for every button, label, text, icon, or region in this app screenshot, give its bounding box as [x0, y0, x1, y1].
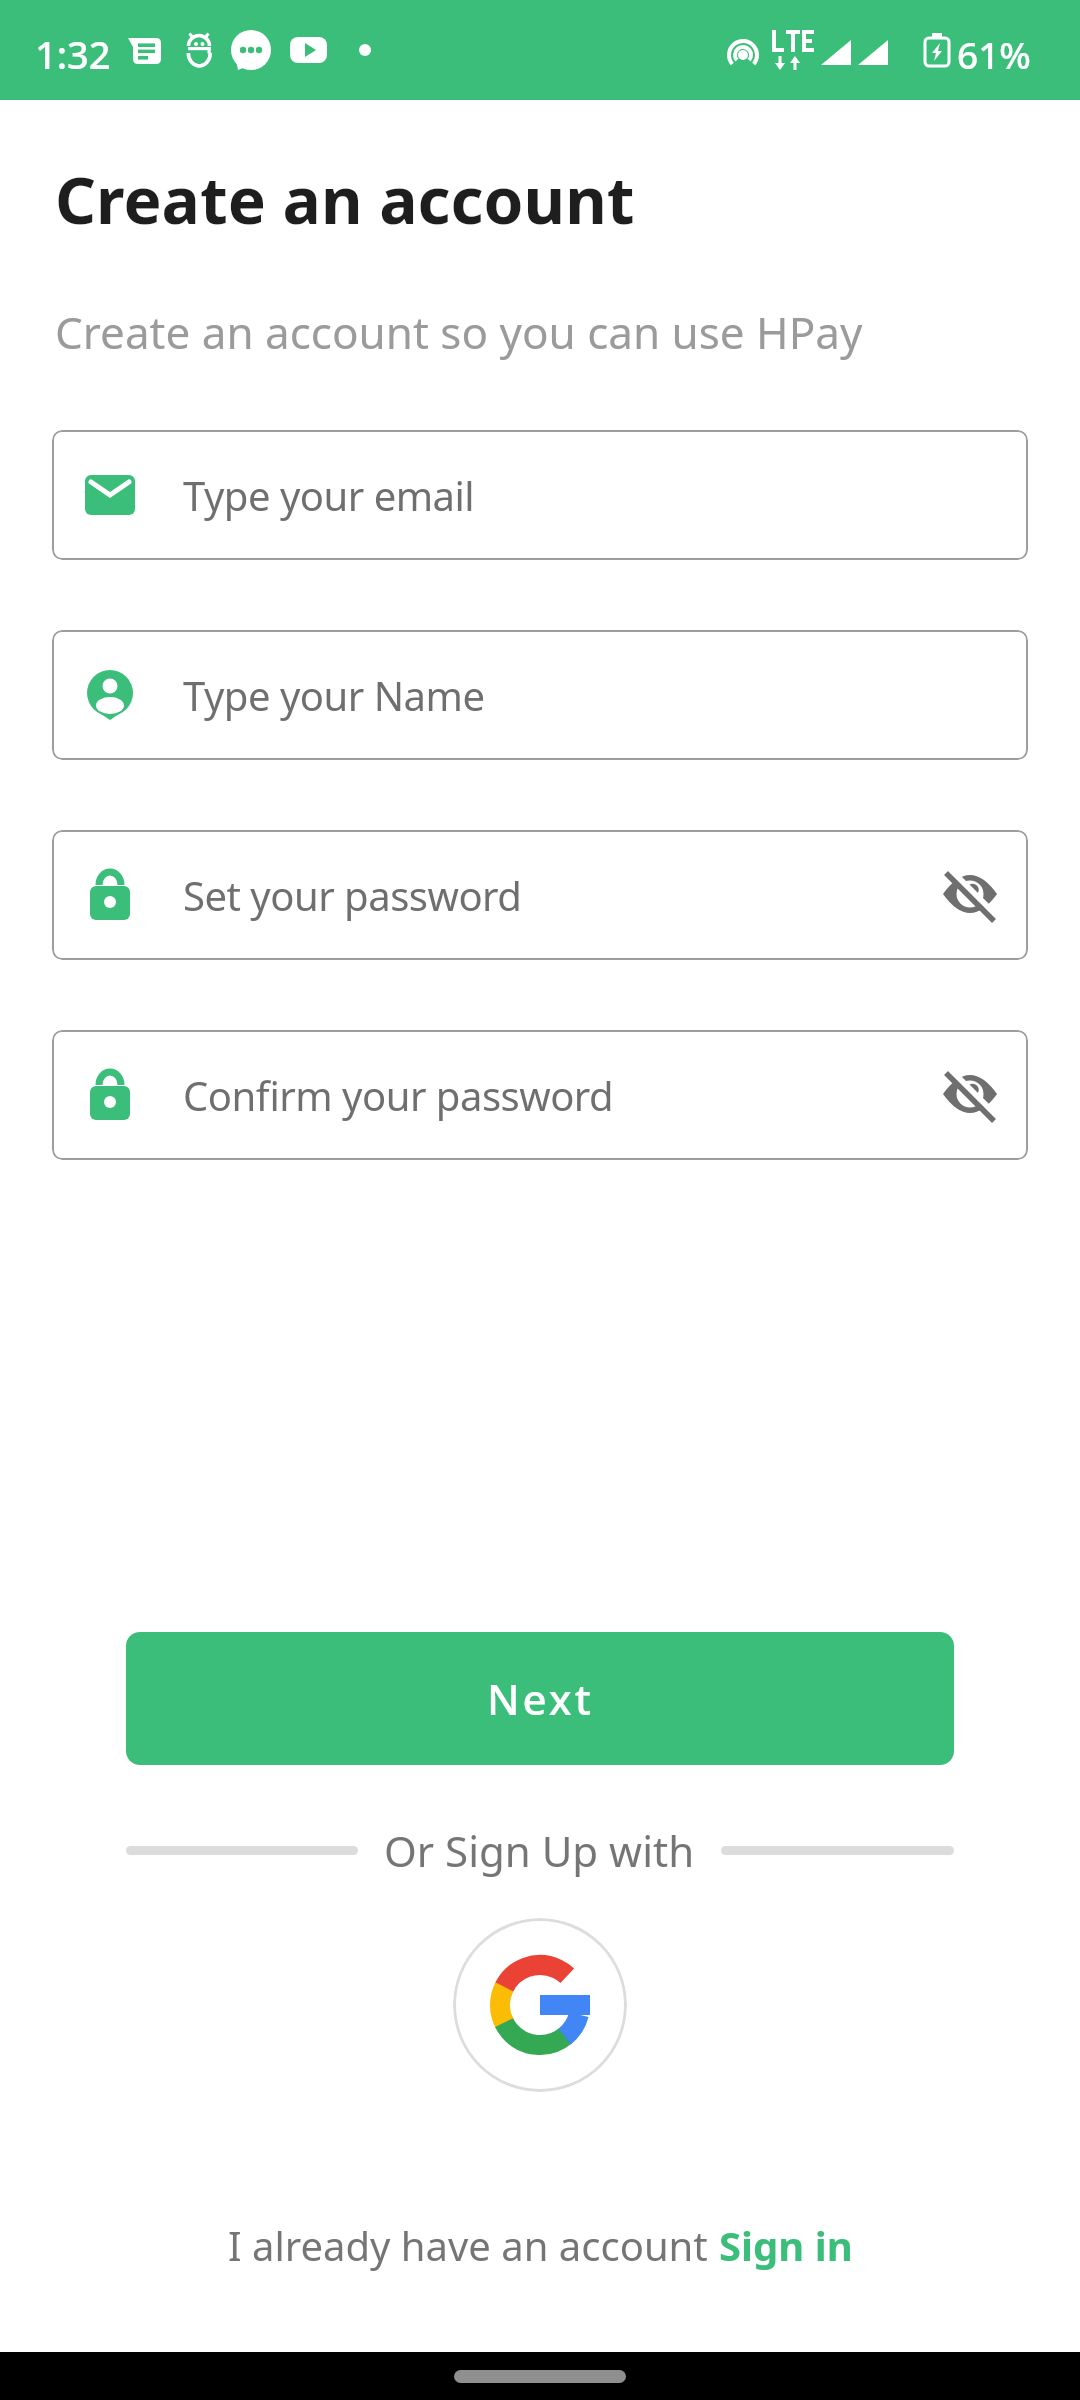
button[interactable]: Type your Name	[52, 630, 1028, 760]
staticText: Or Sign Up with	[384, 1822, 695, 1879]
staticText: 61%	[957, 29, 1031, 79]
staticText: Type your Name	[183, 668, 485, 722]
button[interactable]: Type your email	[52, 430, 1028, 560]
staticText: 1:32	[35, 28, 111, 80]
button[interactable]: Sign in	[719, 2218, 853, 2272]
button[interactable]: Next	[126, 1632, 954, 1765]
staticText: Create an account so you can use HPay	[55, 302, 863, 362]
staticText: Set your password	[183, 868, 522, 922]
staticText: Create an account	[55, 156, 635, 243]
staticText: Next	[487, 1670, 594, 1727]
staticText: Type your email	[183, 468, 475, 522]
button[interactable]	[453, 1918, 627, 2092]
button[interactable]: Confirm your password	[52, 1030, 1028, 1160]
staticText: Confirm your password	[183, 1068, 614, 1122]
staticText: I already have an account	[228, 2218, 719, 2272]
button[interactable]: Set your password	[52, 830, 1028, 960]
